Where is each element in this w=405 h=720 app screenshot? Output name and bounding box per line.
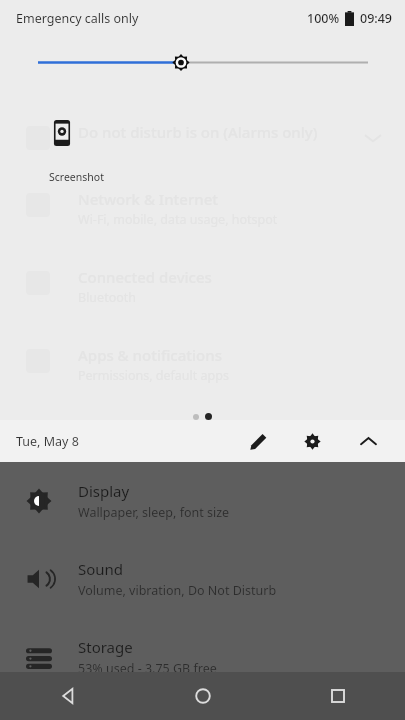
staticText: 53% used - 3.75 GB free	[78, 660, 217, 677]
staticText: 09:49	[360, 10, 393, 27]
staticText: Sound	[78, 559, 124, 579]
button[interactable]	[0, 36, 405, 70]
staticText: Emergency calls only	[16, 10, 139, 27]
button[interactable]: Screenshot	[47, 118, 106, 186]
staticText: Screenshot	[49, 170, 104, 184]
staticText: Storage	[78, 637, 133, 657]
button[interactable]: Collapse	[351, 424, 385, 458]
staticText: 100%	[307, 10, 340, 27]
button[interactable]: Sound	[0, 540, 405, 618]
staticText: Tue, May 8	[16, 433, 79, 450]
staticText: Volume, vibration, Do Not Disturb	[78, 582, 277, 599]
button[interactable]: Display	[0, 462, 405, 540]
button[interactable]: Edit	[241, 424, 275, 458]
button[interactable]: Storage	[0, 618, 405, 696]
button[interactable]: Settings	[295, 424, 329, 458]
button[interactable]: Home	[135, 672, 270, 720]
staticText: Display	[78, 481, 130, 501]
button[interactable]: Recents	[270, 672, 405, 720]
staticText: Wallpaper, sleep, font size	[78, 504, 230, 521]
button[interactable]: Back	[0, 672, 135, 720]
